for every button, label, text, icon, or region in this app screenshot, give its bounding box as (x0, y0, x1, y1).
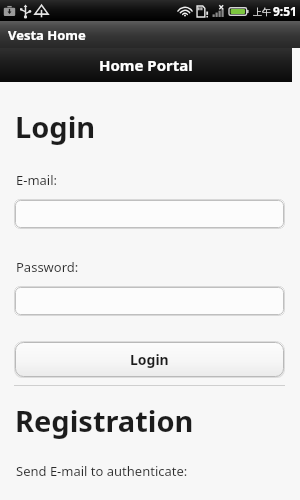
staticText: Login (130, 350, 169, 369)
staticText: Login (15, 107, 96, 146)
button[interactable]: Home Portal (0, 48, 292, 82)
button[interactable] (14, 199, 285, 229)
staticText: 9:51 (273, 3, 297, 19)
staticText: E-mail: (16, 171, 58, 189)
button[interactable]: Login (14, 341, 285, 378)
staticText: Password: (16, 258, 79, 276)
staticText: Vesta Home (8, 26, 86, 44)
staticText: 上午 (253, 6, 271, 17)
staticText: Home Portal (99, 55, 193, 75)
button[interactable] (14, 286, 285, 316)
staticText: Send E-mail to authenticate: (16, 462, 188, 480)
staticText: Registration (15, 401, 194, 440)
